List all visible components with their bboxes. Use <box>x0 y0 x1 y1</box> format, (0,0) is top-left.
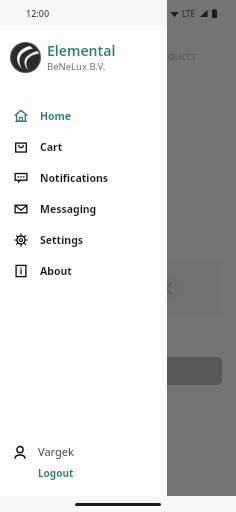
button[interactable]: Home <box>0 100 167 131</box>
staticText: BeNeLux B.V. <box>47 60 106 73</box>
staticText: Vargek <box>38 444 74 459</box>
button[interactable]: Close navigation drawer <box>0 0 236 512</box>
staticText: Elemental <box>47 41 116 60</box>
staticText: Settings <box>40 233 84 247</box>
staticText: Home <box>40 109 72 123</box>
button[interactable]: Notifications <box>0 162 167 193</box>
staticText: Products <box>150 48 196 63</box>
button[interactable]: Cart <box>0 131 167 162</box>
button[interactable]: About <box>0 255 167 286</box>
button[interactable]: Vargek <box>0 438 167 486</box>
button[interactable]: Messaging <box>0 193 167 224</box>
staticText: About <box>40 264 72 278</box>
button[interactable]: Logout <box>38 466 74 480</box>
staticText: Cart <box>40 140 63 154</box>
staticText: Messaging <box>40 202 97 216</box>
button[interactable]: Settings <box>0 224 167 255</box>
staticText: LTE <box>182 8 196 19</box>
staticText: Notifications <box>40 171 109 185</box>
staticText: 12:00 <box>26 7 50 19</box>
button[interactable]: Close <box>152 275 179 302</box>
